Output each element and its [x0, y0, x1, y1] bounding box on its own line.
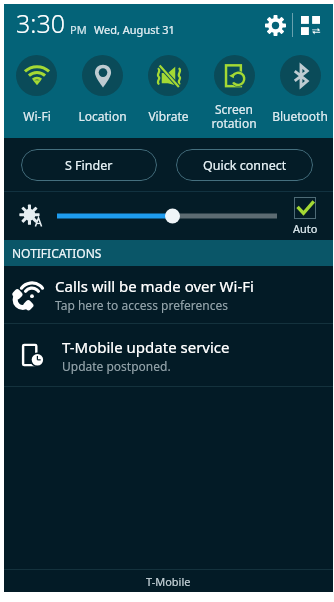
button[interactable]: Wi-Fi [4, 46, 69, 134]
staticText: Vibrate [148, 108, 189, 124]
staticText: Update postponed. [62, 358, 171, 374]
staticText: PM [70, 22, 87, 37]
staticText: Wed, August 31 [94, 22, 175, 37]
staticText: Auto [293, 221, 318, 236]
staticText: Screen rotation [211, 101, 257, 132]
button[interactable]: Brightness [4, 194, 57, 238]
staticText: Tap here to access preferences [55, 297, 229, 313]
staticText: Calls will be made over Wi-Fi [55, 276, 254, 296]
button[interactable]: Bluetooth [267, 46, 333, 134]
staticText: Quick connect [203, 157, 287, 174]
button[interactable]: S Finder [21, 149, 157, 181]
button[interactable]: Quick connect [176, 149, 313, 181]
button[interactable]: Calls will be made over Wi-Fi [4, 266, 333, 323]
button[interactable]: Auto [277, 197, 333, 236]
button[interactable]: Screen rotation [201, 46, 267, 134]
staticText: T-Mobile [146, 574, 191, 589]
button[interactable]: Location [69, 46, 135, 134]
button[interactable]: Settings [258, 8, 292, 42]
staticText: NOTIFICATIONS [12, 245, 102, 261]
staticText: 3:30 [16, 6, 65, 40]
staticText: Location [78, 108, 127, 124]
button[interactable]: Vibrate [135, 46, 201, 134]
staticText: Bluetooth [272, 108, 328, 124]
staticText: T-Mobile update service [62, 337, 230, 357]
button[interactable]: T-Mobile update service [4, 324, 333, 386]
staticText: Wi-Fi [23, 108, 51, 124]
staticText: S Finder [65, 157, 113, 174]
button[interactable]: Edit quick settings [293, 8, 327, 42]
